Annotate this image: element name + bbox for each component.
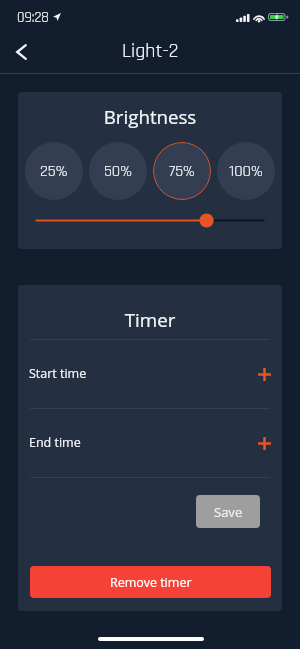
staticText: 100% <box>229 161 263 182</box>
staticText: Light-2 <box>122 38 179 64</box>
staticText: Remove timer <box>110 574 192 591</box>
button[interactable]: 75% <box>153 142 211 200</box>
staticText: 25% <box>40 161 68 182</box>
staticText: Start time <box>29 365 247 382</box>
staticText: Brightness <box>18 104 282 129</box>
staticText: Timer <box>18 307 282 332</box>
button[interactable]: End time <box>29 408 271 477</box>
button[interactable]: Back <box>0 31 42 73</box>
button[interactable]: 50% <box>89 142 147 200</box>
staticText: 75% <box>169 161 195 182</box>
button[interactable]: 100% <box>217 142 275 200</box>
button[interactable]: Start time <box>29 339 271 408</box>
button[interactable]: Remove timer <box>30 566 271 598</box>
staticText: Save <box>214 503 243 521</box>
button[interactable]: Add Start time <box>247 362 271 386</box>
button[interactable]: Add End time <box>247 431 271 455</box>
staticText: 50% <box>104 161 132 182</box>
button[interactable]: 25% <box>25 142 83 200</box>
button[interactable]: Save <box>196 495 260 528</box>
staticText: 09:28 <box>17 9 49 28</box>
staticText: End time <box>29 434 247 451</box>
